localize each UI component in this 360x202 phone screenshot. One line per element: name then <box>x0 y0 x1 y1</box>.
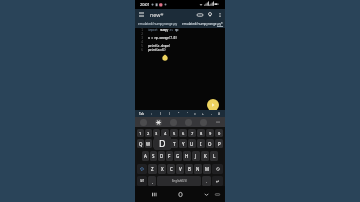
button[interactable]: N <box>194 164 202 174</box>
button[interactable]: Hide keyboard <box>213 190 222 199</box>
staticText: 4 <box>135 40 143 44</box>
staticText: numpy <box>160 28 168 32</box>
button[interactable]: Y <box>179 139 187 148</box>
button[interactable]: A <box>142 151 149 161</box>
button[interactable]: S <box>150 151 157 161</box>
button[interactable]: V <box>176 164 184 174</box>
staticText: Tab <box>139 112 145 116</box>
button[interactable]: 9 <box>206 129 214 137</box>
button[interactable]: D <box>158 151 165 161</box>
staticText: 20:01 <box>140 2 150 7</box>
button[interactable]: Back <box>193 186 219 202</box>
staticText: H <box>185 153 189 159</box>
button[interactable]: Suggestion 2 <box>151 117 166 127</box>
staticText: 5 <box>135 44 143 48</box>
button[interactable]: emulated/numpyrange.py <box>135 20 180 28</box>
button[interactable]: 5 <box>170 129 178 137</box>
button[interactable]: T <box>170 139 178 148</box>
button[interactable]: H <box>183 151 191 161</box>
button[interactable]: K <box>201 151 209 161</box>
button[interactable]: I <box>197 139 205 148</box>
button[interactable]: , <box>148 176 156 186</box>
button[interactable]: ) <box>165 110 174 117</box>
button[interactable]: . <box>202 176 211 186</box>
button[interactable]: P <box>215 139 223 148</box>
button[interactable]: ' <box>183 110 191 117</box>
button[interactable]: U <box>188 139 196 148</box>
staticText: 2 <box>135 32 143 36</box>
button[interactable]: Expand toolbar <box>211 117 225 127</box>
button[interactable]: Home <box>167 186 193 202</box>
staticText: # <box>218 112 220 116</box>
staticText: I <box>200 141 202 147</box>
staticText: np <box>175 28 179 32</box>
button[interactable]: X <box>158 164 166 174</box>
button[interactable]: 8 <box>197 129 205 137</box>
staticText: 8 <box>200 131 203 136</box>
button[interactable]: Symbols <box>137 176 147 186</box>
button[interactable]: O <box>206 139 214 148</box>
button[interactable]: F <box>166 151 173 161</box>
button[interactable]: W <box>145 139 152 148</box>
staticText: + <box>202 112 204 116</box>
staticText: import <box>148 28 160 32</box>
button[interactable]: Z <box>148 164 157 174</box>
button[interactable]: 1 <box>137 129 144 137</box>
button[interactable]: B <box>185 164 193 174</box>
staticText: emulated/numpyrange.py* <box>182 22 223 26</box>
staticText: " <box>178 112 180 116</box>
button[interactable]: L <box>210 151 218 161</box>
button[interactable]: Recent apps <box>142 186 167 202</box>
button[interactable]: Enter <box>212 176 223 186</box>
button[interactable]: Suggestion 1 <box>136 117 151 127</box>
button[interactable]: Suggestion 5 <box>196 117 211 127</box>
staticText: ( <box>160 112 161 116</box>
staticText: S <box>152 153 155 159</box>
button[interactable]: 6 <box>179 129 187 137</box>
staticText: J <box>195 153 197 159</box>
button[interactable]: Shift <box>137 164 147 174</box>
button[interactable]: J <box>192 151 200 161</box>
button[interactable]: E <box>153 139 160 148</box>
staticText: X <box>161 166 164 172</box>
button[interactable]: Console <box>195 10 205 20</box>
button[interactable]: # <box>215 110 223 117</box>
button[interactable]: 2 <box>145 129 152 137</box>
staticText: 5 <box>173 131 176 136</box>
staticText: as <box>168 28 175 32</box>
staticText: Q <box>139 141 143 147</box>
button[interactable]: English(US) <box>157 176 201 186</box>
button[interactable]: ( <box>156 110 165 117</box>
button[interactable]: More options <box>215 10 224 19</box>
button[interactable]: Tab <box>139 112 145 116</box>
button[interactable]: C <box>167 164 175 174</box>
button[interactable]: 4 <box>161 129 169 137</box>
button[interactable]: R <box>161 139 169 148</box>
staticText: L <box>213 153 216 159</box>
button[interactable]: Navigation menu <box>137 10 146 19</box>
button[interactable]: = <box>191 110 199 117</box>
button[interactable]: 7 <box>188 129 196 137</box>
button[interactable]: G <box>174 151 182 161</box>
button[interactable]: : <box>147 110 156 117</box>
button[interactable]: M <box>203 164 211 174</box>
button[interactable]: " <box>174 110 183 117</box>
button[interactable]: 0 <box>215 129 223 137</box>
staticText: = <box>194 112 196 116</box>
button[interactable]: + <box>199 110 207 117</box>
staticText: emulated/numpyrange.py <box>138 22 178 26</box>
button[interactable]: Suggestion 4 <box>181 117 196 127</box>
button[interactable]: Run <box>207 99 219 111</box>
staticText: D <box>160 153 164 159</box>
button[interactable]: Q <box>137 139 144 148</box>
staticText: V <box>179 166 182 172</box>
button[interactable]: Backspace <box>212 164 223 174</box>
button[interactable]: Suggestion 3 <box>166 117 181 127</box>
button[interactable]: - <box>207 110 215 117</box>
staticText: . <box>206 179 207 184</box>
button[interactable]: emulated/numpyrange.py* <box>180 20 225 28</box>
button[interactable]: Hints <box>205 10 215 20</box>
button[interactable]: 3 <box>153 129 160 137</box>
staticText: P <box>218 141 221 147</box>
